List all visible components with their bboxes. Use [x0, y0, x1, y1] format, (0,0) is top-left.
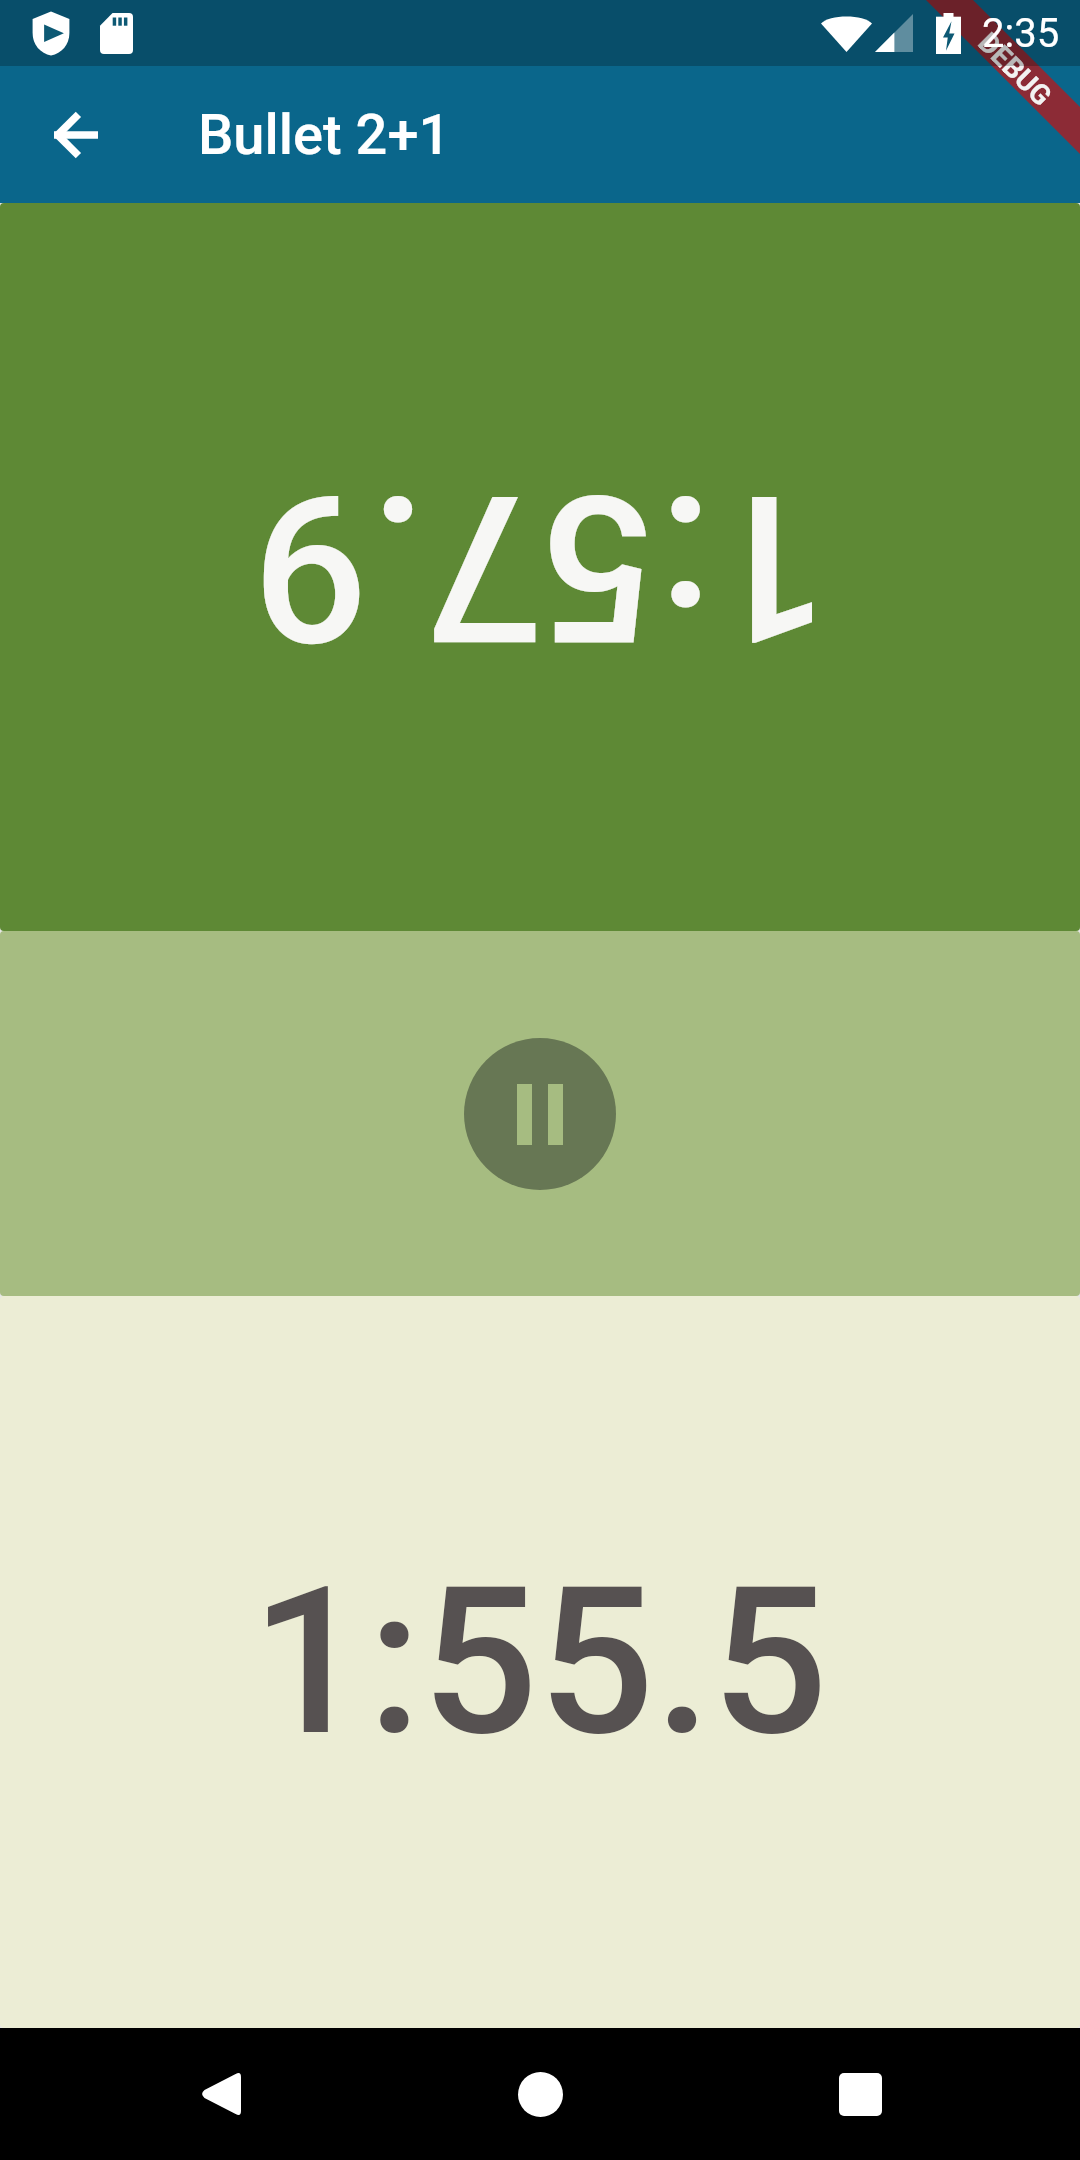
- button[interactable]: Home: [474, 2028, 606, 2160]
- staticText: Bullet 2+1: [198, 102, 451, 168]
- button[interactable]: Bottom player clock: [0, 1296, 1080, 2028]
- button[interactable]: Navigate back: [154, 2028, 286, 2160]
- button[interactable]: Back: [0, 66, 152, 203]
- button[interactable]: Top player clock: [0, 203, 1080, 931]
- staticText: 1:57.9: [251, 447, 829, 687]
- staticText: DEBUG: [971, 26, 1058, 113]
- staticText: 1:55.5: [251, 1542, 829, 1782]
- button[interactable]: Pause: [464, 1038, 616, 1190]
- staticText: 2:35: [982, 10, 1060, 57]
- button[interactable]: Recents: [794, 2028, 926, 2160]
